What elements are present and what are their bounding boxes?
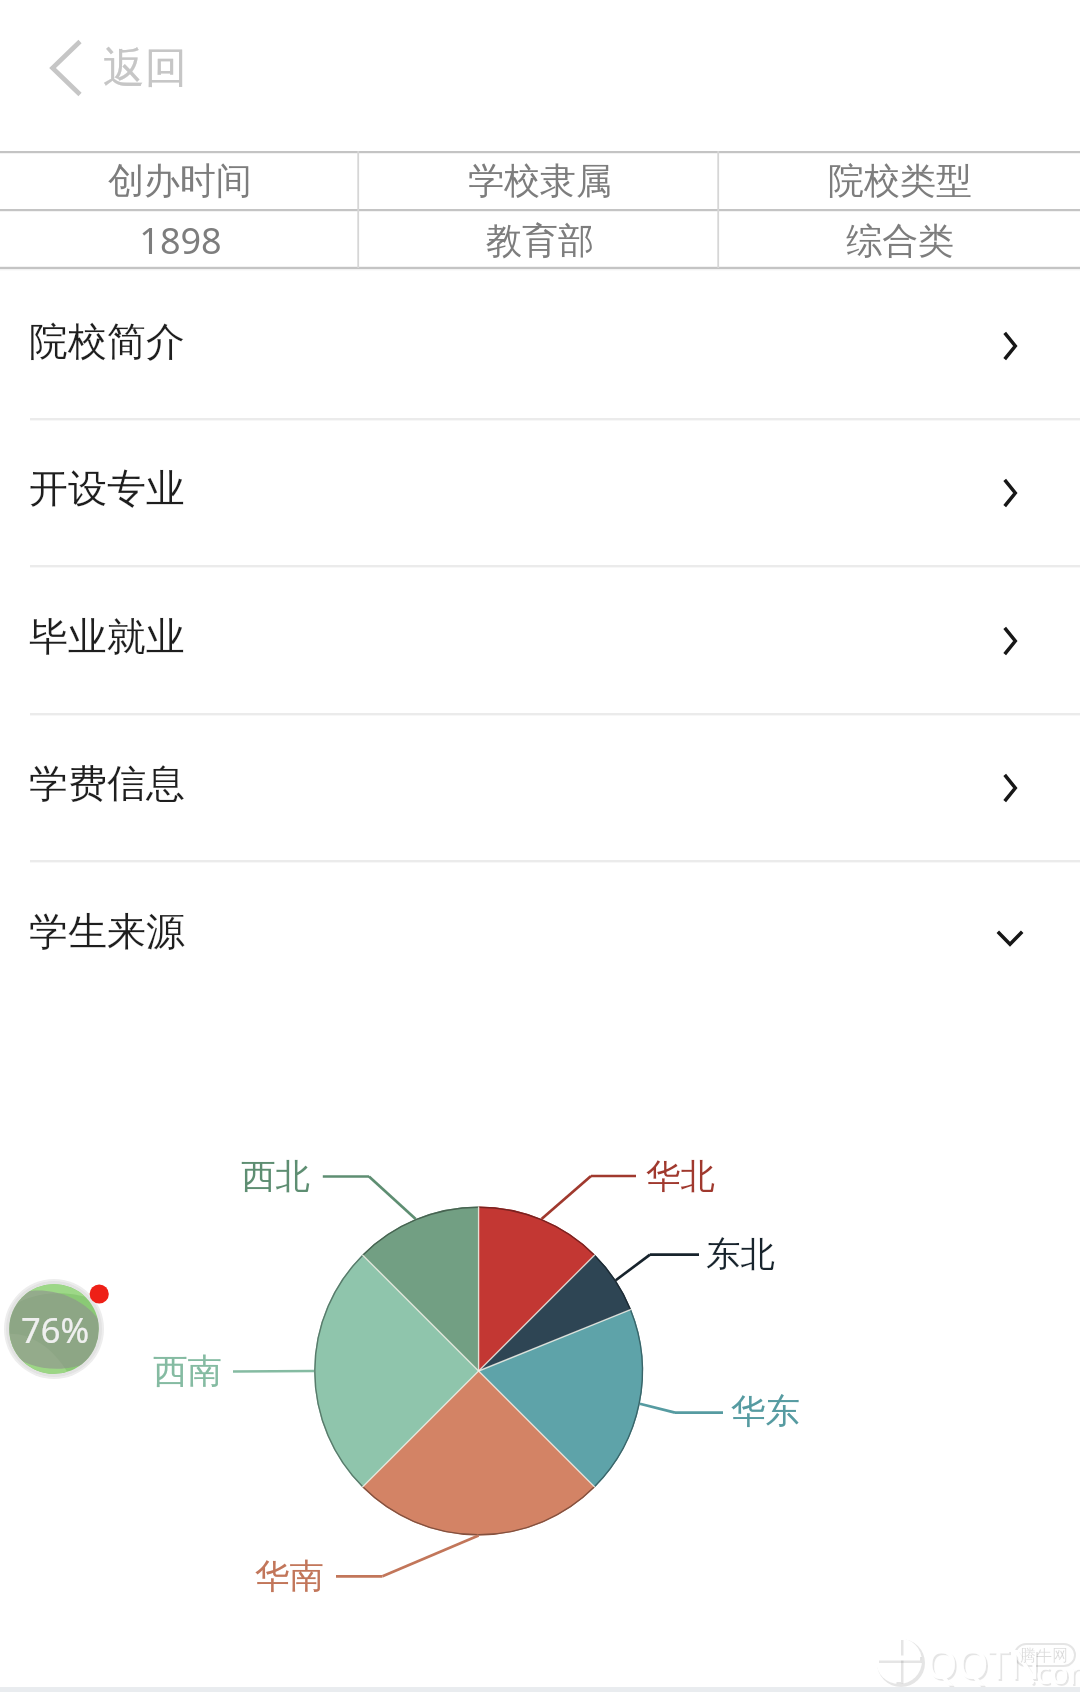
staticText: 76% <box>21 1306 90 1353</box>
staticText: 学生来源 <box>29 907 185 956</box>
staticText: 学校隶属 <box>468 158 612 203</box>
button[interactable]: 毕业就业 <box>0 568 1080 716</box>
staticText: 西南 <box>153 1350 222 1393</box>
staticText: .com <box>1030 1654 1080 1692</box>
staticText: 华北 <box>646 1155 715 1198</box>
button[interactable]: 学费信息 <box>0 715 1080 863</box>
staticText: 综合类 <box>846 218 954 263</box>
staticText: 院校简介 <box>29 317 185 366</box>
button[interactable]: 返回 <box>37 26 201 110</box>
staticText: 创办时间 <box>108 158 252 203</box>
staticText: .com <box>1028 1652 1080 1692</box>
staticText: 返回 <box>103 42 187 95</box>
staticText: 教育部 <box>486 218 594 263</box>
staticText: 院校类型 <box>828 158 972 203</box>
staticText: 华东 <box>731 1390 800 1433</box>
staticText: 东北 <box>706 1233 775 1276</box>
button[interactable]: Download progress 76 percent <box>4 1279 104 1379</box>
staticText: 华南 <box>255 1555 324 1598</box>
staticText: 开设专业 <box>29 464 185 513</box>
button[interactable]: 院校简介 <box>0 273 1080 421</box>
staticText: 1898 <box>139 216 222 265</box>
staticText: 毕业就业 <box>29 612 185 661</box>
button[interactable]: 学生来源 <box>0 863 1080 1011</box>
staticText: QQTN <box>926 1636 1040 1690</box>
staticText: 腾牛网 <box>1020 1646 1068 1666</box>
staticText: QQTN <box>928 1638 1042 1692</box>
button[interactable]: 开设专业 <box>0 420 1080 568</box>
staticText: 学费信息 <box>29 759 185 808</box>
staticText: 西北 <box>241 1155 310 1198</box>
